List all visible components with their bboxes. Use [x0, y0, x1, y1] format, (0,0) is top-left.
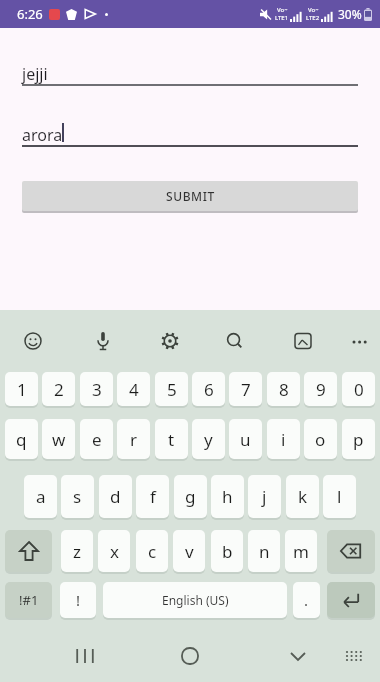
staticText: w: [52, 428, 66, 451]
staticText: o: [315, 428, 326, 451]
staticText: u: [240, 428, 251, 451]
button[interactable]: p: [342, 419, 375, 459]
button[interactable]: 2: [42, 372, 75, 406]
button[interactable]: b: [211, 530, 243, 572]
staticText: b: [222, 540, 233, 563]
staticText: z: [73, 540, 81, 563]
button[interactable]: SUBMIT: [22, 181, 358, 211]
button[interactable]: z: [61, 530, 93, 572]
staticText: !: [76, 590, 81, 610]
button[interactable]: h: [211, 475, 244, 518]
button[interactable]: [94, 332, 112, 350]
staticText: g: [185, 485, 196, 508]
button[interactable]: [350, 332, 370, 352]
button[interactable]: r: [117, 419, 150, 459]
button[interactable]: 5: [155, 372, 188, 406]
staticText: Vo⁠״: [277, 6, 288, 14]
staticText: h: [222, 485, 233, 508]
button[interactable]: i: [267, 419, 300, 459]
staticText: 0: [354, 378, 364, 401]
button[interactable]: o: [304, 419, 337, 459]
staticText: 9: [316, 378, 326, 401]
staticText: e: [92, 428, 102, 451]
staticText: 4: [129, 378, 139, 401]
button[interactable]: f: [136, 475, 169, 518]
button[interactable]: 0: [342, 372, 375, 406]
staticText: LTE1: [275, 14, 289, 22]
button[interactable]: [327, 582, 375, 618]
button[interactable]: q: [5, 419, 38, 459]
button[interactable]: [344, 646, 364, 666]
button[interactable]: .: [293, 582, 320, 618]
staticText: 6:26: [17, 5, 43, 23]
staticText: Vo⁠״: [308, 6, 319, 14]
staticText: i: [281, 428, 286, 451]
button[interactable]: English (US): [103, 582, 287, 618]
button[interactable]: n: [248, 530, 280, 572]
button[interactable]: e: [80, 419, 113, 459]
staticText: 6: [204, 378, 214, 401]
staticText: 5: [167, 378, 177, 401]
button[interactable]: !: [60, 582, 96, 618]
button[interactable]: m: [285, 530, 317, 572]
staticText: f: [150, 485, 156, 508]
button[interactable]: [5, 530, 52, 572]
button[interactable]: [24, 332, 42, 350]
staticText: p: [353, 428, 364, 451]
button[interactable]: a: [24, 475, 57, 518]
button[interactable]: c: [136, 530, 168, 572]
staticText: s: [73, 485, 82, 508]
staticText: 2: [54, 378, 64, 401]
button[interactable]: u: [229, 419, 262, 459]
button[interactable]: 8: [267, 372, 300, 406]
button[interactable]: d: [99, 475, 132, 518]
staticText: arora: [22, 124, 63, 146]
staticText: 1: [17, 378, 27, 401]
button[interactable]: j: [248, 475, 281, 518]
button[interactable]: w: [42, 419, 75, 459]
staticText: English (US): [162, 592, 229, 608]
staticText: r: [130, 428, 138, 451]
button[interactable]: [294, 332, 312, 350]
button[interactable]: y: [192, 419, 225, 459]
staticText: 30%: [338, 6, 362, 22]
button[interactable]: 4: [117, 372, 150, 406]
button[interactable]: 9: [304, 372, 337, 406]
staticText: m: [293, 540, 309, 563]
staticText: v: [185, 540, 194, 563]
button[interactable]: [327, 530, 375, 572]
staticText: LTE2: [306, 14, 320, 22]
button[interactable]: 1: [5, 372, 38, 406]
staticText: d: [110, 485, 121, 508]
staticText: l: [337, 485, 342, 508]
staticText: .: [304, 590, 309, 610]
button[interactable]: l: [323, 475, 356, 518]
button[interactable]: 7: [229, 372, 262, 406]
staticText: SUBMIT: [166, 188, 215, 204]
staticText: c: [148, 540, 157, 563]
staticText: j: [262, 485, 267, 508]
button[interactable]: [72, 646, 98, 666]
staticText: 3: [92, 378, 102, 401]
button[interactable]: 3: [80, 372, 113, 406]
staticText: 8: [279, 378, 289, 401]
staticText: n: [259, 540, 270, 563]
button[interactable]: v: [173, 530, 205, 572]
staticText: q: [16, 428, 27, 451]
staticText: y: [204, 428, 213, 451]
button[interactable]: 6: [192, 372, 225, 406]
staticText: k: [298, 485, 308, 508]
button[interactable]: [288, 646, 308, 666]
button[interactable]: s: [61, 475, 94, 518]
button[interactable]: [161, 332, 179, 350]
button[interactable]: [180, 646, 200, 666]
staticText: x: [110, 540, 119, 563]
button[interactable]: x: [98, 530, 130, 572]
button[interactable]: g: [174, 475, 207, 518]
button[interactable]: k: [286, 475, 319, 518]
button[interactable]: [226, 332, 244, 350]
button[interactable]: !#1: [5, 582, 52, 618]
button[interactable]: t: [155, 419, 188, 459]
